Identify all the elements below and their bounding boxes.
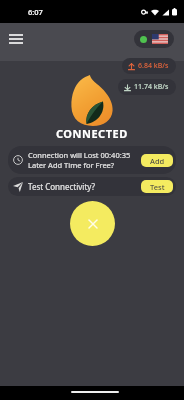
staticText: 11.74 kB/s	[134, 82, 169, 92]
button[interactable]: Test Connectivity?	[8, 177, 176, 196]
button[interactable]: Connection will Lost 00:40:35 Later Add …	[8, 146, 176, 174]
staticText: Add	[150, 156, 165, 166]
staticText: Connection will Lost 00:40:35 Later Add …	[28, 150, 137, 170]
staticText: 6:07	[28, 7, 43, 17]
button[interactable]: Menu	[2, 25, 30, 53]
staticText: CONNECTED	[56, 126, 128, 141]
button[interactable]: Disconnect	[70, 201, 115, 246]
button[interactable]: Select country	[134, 30, 174, 48]
staticText: 6.84 kB/s	[138, 61, 169, 71]
staticText: Test	[150, 182, 165, 192]
button[interactable]: Add	[141, 154, 173, 167]
staticText: Test Connectivity?	[28, 181, 137, 192]
button[interactable]: Test	[141, 180, 173, 193]
